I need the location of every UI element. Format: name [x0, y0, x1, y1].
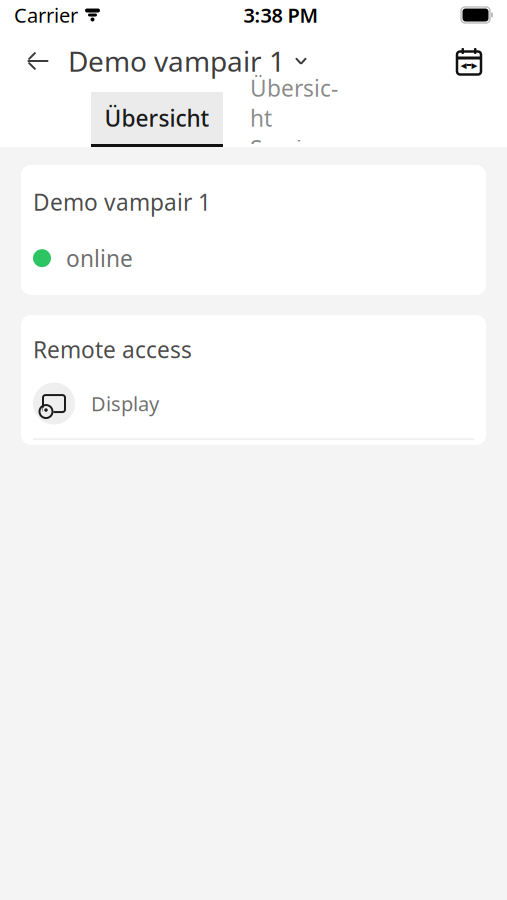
staticText: 3:38 PM [243, 2, 318, 28]
staticText: ◂ [460, 58, 466, 72]
staticText: Demo vampair 1 [33, 187, 211, 217]
staticText: Übersicht Service [250, 73, 338, 163]
button[interactable]: Display [33, 365, 474, 425]
button[interactable]: Demo vampair 1 [68, 34, 307, 88]
staticText: Übersicht [104, 103, 209, 133]
button[interactable]: Übersicht [91, 92, 223, 147]
button[interactable]: Back [16, 39, 60, 83]
button[interactable]: Übersicht Service [223, 92, 365, 147]
staticText: Carrier [14, 2, 78, 28]
staticText: Display [91, 390, 159, 417]
staticText: Demo vampair 1 [68, 42, 285, 80]
staticText: online [66, 243, 133, 273]
button[interactable]: Schedule [447, 39, 491, 83]
staticText: Remote access [33, 334, 192, 364]
staticText: ▸ [471, 58, 477, 72]
